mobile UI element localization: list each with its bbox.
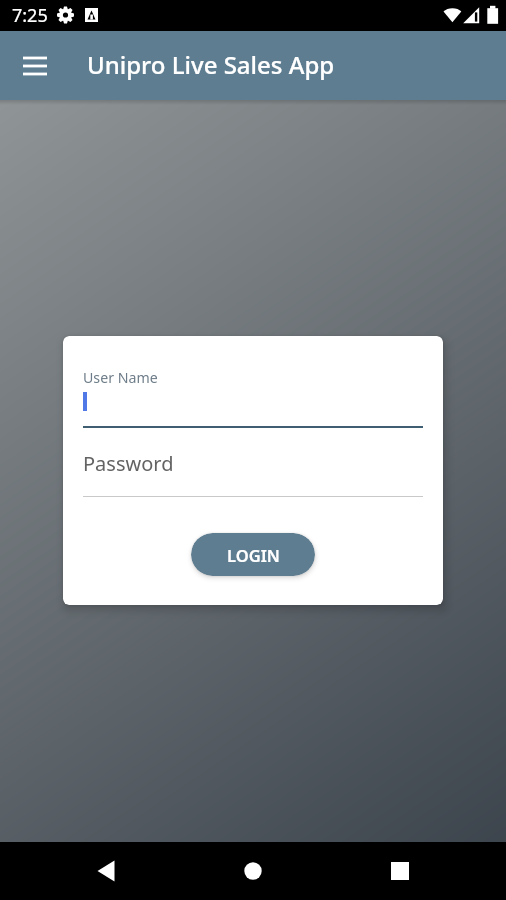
- button[interactable]: Open navigation menu: [11, 42, 59, 90]
- staticText: Unipro Live Sales App: [87, 48, 335, 81]
- button[interactable]: Home: [225, 842, 281, 900]
- button[interactable]: User Name: [83, 362, 423, 428]
- button[interactable]: Back: [78, 842, 134, 900]
- staticText: 7:25: [12, 3, 48, 28]
- button[interactable]: Password: [83, 444, 423, 497]
- staticText: Password: [83, 450, 174, 477]
- button[interactable]: LOGIN: [191, 533, 315, 576]
- button[interactable]: Recent apps: [372, 842, 428, 900]
- staticText: User Name: [83, 368, 158, 387]
- staticText: LOGIN: [227, 544, 280, 566]
